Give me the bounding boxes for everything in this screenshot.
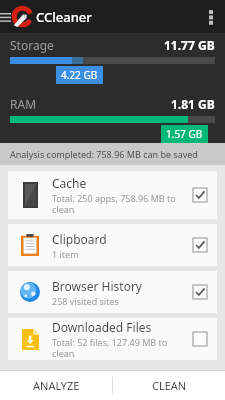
button[interactable]: More options xyxy=(200,6,222,28)
staticText: Downloaded Files xyxy=(52,319,152,335)
button[interactable]: Downloaded Files not selected xyxy=(183,318,217,360)
staticText: 1.57 GB xyxy=(166,127,203,141)
staticText: 4.22 GB xyxy=(61,68,98,82)
staticText: 1.81 GB xyxy=(171,96,215,112)
staticText: Analysis completed: 758.96 MB can be sav… xyxy=(10,148,198,160)
button[interactable]: Cache xyxy=(8,171,217,219)
button[interactable]: Open navigation drawer xyxy=(0,7,15,27)
button[interactable]: ANALYZE xyxy=(0,371,112,400)
button[interactable]: Clipboard selected xyxy=(183,224,217,266)
button[interactable]: Downloaded Files xyxy=(8,318,217,360)
staticText: 11.77 GB xyxy=(164,37,215,53)
button[interactable]: Browser History selected xyxy=(183,271,217,313)
staticText: ANALYZE xyxy=(33,378,80,393)
staticText: 1 item xyxy=(52,248,79,260)
button[interactable]: Browser History xyxy=(8,271,217,313)
staticText: 258 visited sites xyxy=(52,295,119,307)
staticText: Storage xyxy=(10,37,54,53)
button[interactable]: CLEAN xyxy=(113,371,225,400)
button[interactable]: Clipboard xyxy=(8,224,217,266)
staticText: CLEAN xyxy=(152,378,187,393)
staticText: Total: 52 files, 127.49 MB to clean xyxy=(52,336,183,359)
staticText: CCleaner xyxy=(36,8,92,26)
staticText: Clipboard xyxy=(52,231,107,247)
staticText: Total: 250 apps, 758.96 MB to clean xyxy=(52,192,176,215)
staticText: Cache xyxy=(52,175,87,191)
staticText: RAM xyxy=(10,96,37,112)
staticText: Browser History xyxy=(52,278,142,294)
button[interactable]: Cache selected xyxy=(183,171,217,219)
